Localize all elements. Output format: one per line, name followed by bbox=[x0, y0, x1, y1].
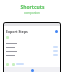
button[interactable] bbox=[6, 49, 58, 53]
button[interactable]: Loading bbox=[31, 69, 34, 72]
button[interactable] bbox=[6, 53, 58, 57]
button[interactable] bbox=[6, 41, 58, 45]
staticText: companion bbox=[24, 11, 40, 15]
button[interactable] bbox=[6, 45, 58, 49]
staticText: Export Steps bbox=[6, 29, 28, 34]
button[interactable]: Account bbox=[55, 30, 58, 33]
staticText: Shortcuts bbox=[20, 4, 45, 11]
